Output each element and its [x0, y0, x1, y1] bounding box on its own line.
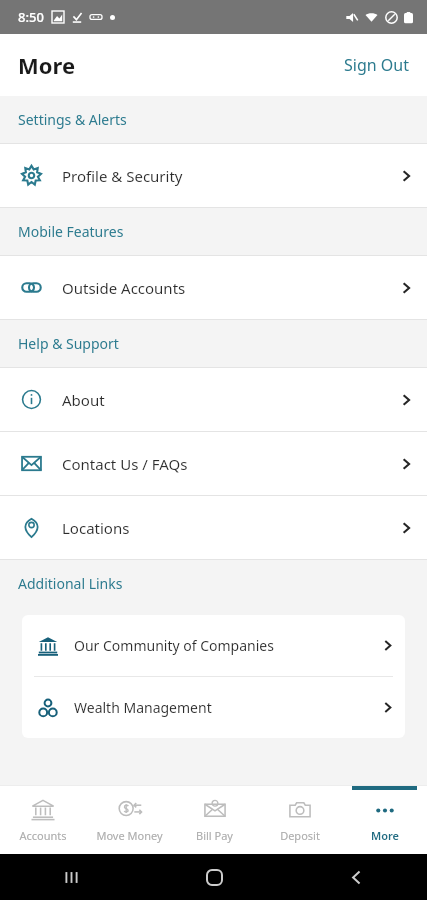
button[interactable]: Back	[338, 859, 375, 896]
staticText: Accounts	[19, 828, 67, 843]
button[interactable]: Recents	[53, 859, 90, 896]
button[interactable]: Accounts	[0, 786, 86, 854]
button[interactable]: Deposit	[257, 786, 342, 854]
staticText: Bill Pay	[196, 828, 233, 843]
button[interactable]: More	[342, 786, 427, 854]
staticText: More	[371, 828, 399, 843]
staticText: Help & Support	[18, 334, 119, 353]
button[interactable]: Profile & Security	[0, 144, 427, 207]
button[interactable]: Locations	[0, 496, 427, 559]
staticText: Our Community of Companies	[74, 636, 369, 655]
button[interactable]: Contact Us / FAQs	[0, 432, 427, 495]
button[interactable]: Sign Out	[326, 42, 427, 88]
staticText: Sign Out	[344, 54, 409, 76]
button[interactable]: Bill Pay	[172, 786, 257, 854]
staticText: Wealth Management	[74, 698, 369, 717]
staticText: More	[18, 50, 76, 80]
button[interactable]: Home	[196, 859, 233, 896]
button[interactable]: Move Money	[86, 786, 172, 854]
button[interactable]: Outside Accounts	[0, 256, 427, 319]
staticText: Mobile Features	[18, 222, 124, 241]
staticText: Profile & Security	[62, 166, 385, 186]
staticText: Additional Links	[18, 574, 123, 593]
staticText: Settings & Alerts	[18, 110, 127, 129]
staticText: Outside Accounts	[62, 278, 385, 298]
staticText: About	[62, 390, 385, 410]
staticText: 8:50	[18, 8, 44, 26]
button[interactable]: Wealth Management	[22, 677, 405, 738]
button[interactable]: About	[0, 368, 427, 431]
staticText: Contact Us / FAQs	[62, 454, 385, 474]
staticText: Deposit	[280, 828, 320, 843]
staticText: Move Money	[96, 828, 163, 843]
staticText: Locations	[62, 518, 385, 538]
button[interactable]: Our Community of Companies	[22, 615, 405, 676]
